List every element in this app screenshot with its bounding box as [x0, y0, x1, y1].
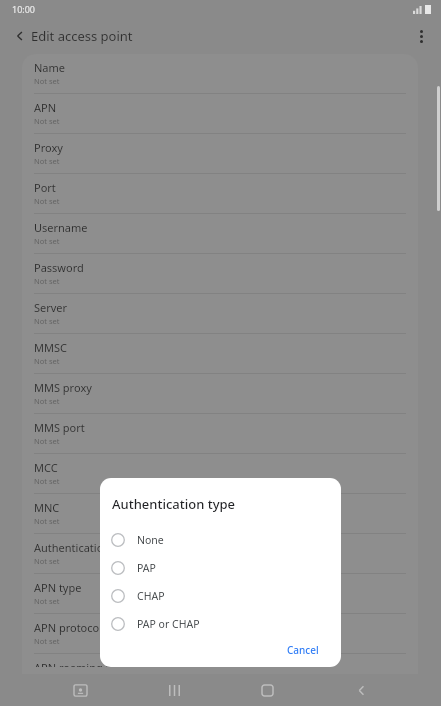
staticText: Not set: [34, 436, 60, 446]
staticText: Not set: [34, 636, 60, 646]
button[interactable]: APN type: [22, 573, 418, 613]
staticText: Name: [34, 60, 66, 75]
staticText: Not set: [34, 116, 60, 126]
staticText: CHAP: [137, 589, 165, 603]
staticText: MCC: [34, 460, 58, 475]
staticText: Not set: [34, 276, 60, 286]
button[interactable]: MMS port: [22, 413, 418, 453]
staticText: Edit access point: [31, 27, 133, 45]
button[interactable]: MMS proxy: [22, 373, 418, 413]
button[interactable]: Back: [8, 24, 32, 48]
button[interactable]: Proxy: [22, 133, 418, 173]
staticText: Cancel: [287, 643, 319, 656]
button[interactable]: APN roaming protocol: [22, 653, 418, 674]
staticText: Not set: [34, 556, 60, 566]
staticText: Authentication type: [112, 495, 236, 513]
staticText: APN protocol: [34, 620, 103, 635]
button[interactable]: PAP or CHAP: [100, 610, 341, 638]
button[interactable]: Server: [22, 293, 418, 333]
button[interactable]: Password: [22, 253, 418, 293]
button[interactable]: None: [100, 526, 341, 554]
button[interactable]: PAP: [100, 554, 341, 582]
staticText: Port: [34, 180, 56, 195]
button[interactable]: MCC: [22, 453, 418, 493]
button[interactable]: Name: [22, 54, 418, 93]
staticText: APN: [34, 100, 57, 115]
staticText: APN roaming protocol: [34, 660, 149, 667]
staticText: Server: [34, 300, 68, 315]
button[interactable]: Back: [347, 676, 375, 704]
staticText: Not set: [34, 316, 60, 326]
staticText: Not set: [34, 596, 60, 606]
staticText: Password: [34, 260, 84, 275]
button[interactable]: Home: [253, 676, 281, 704]
staticText: Not set: [34, 196, 60, 206]
staticText: PAP: [137, 561, 156, 575]
staticText: Not set: [34, 76, 60, 86]
staticText: Authentication type: [34, 540, 136, 555]
staticText: MMS proxy: [34, 380, 92, 395]
button[interactable]: Port: [22, 173, 418, 213]
button[interactable]: Cancel: [277, 638, 329, 661]
staticText: MMS port: [34, 420, 85, 435]
staticText: MNC: [34, 500, 60, 515]
staticText: Not set: [34, 516, 60, 526]
staticText: Not set: [34, 476, 60, 486]
button[interactable]: MNC: [22, 493, 418, 533]
button[interactable]: More options: [409, 24, 433, 48]
staticText: Username: [34, 220, 88, 235]
staticText: Not set: [34, 236, 60, 246]
staticText: Not set: [34, 156, 60, 166]
staticText: Not set: [34, 396, 60, 406]
button[interactable]: MMSC: [22, 333, 418, 373]
staticText: APN type: [34, 580, 82, 595]
button[interactable]: APN protocol: [22, 613, 418, 653]
staticText: None: [137, 533, 164, 547]
staticText: Not set: [34, 356, 60, 366]
button[interactable]: Keyboard: [66, 676, 94, 704]
button[interactable]: Authentication type: [22, 533, 418, 573]
staticText: PAP or CHAP: [137, 617, 200, 631]
button[interactable]: Recents: [160, 676, 188, 704]
staticText: MMSC: [34, 340, 67, 355]
button[interactable]: APN: [22, 93, 418, 133]
button[interactable]: CHAP: [100, 582, 341, 610]
button[interactable]: Username: [22, 213, 418, 253]
staticText: Proxy: [34, 140, 63, 155]
staticText: 10:00: [12, 3, 36, 15]
